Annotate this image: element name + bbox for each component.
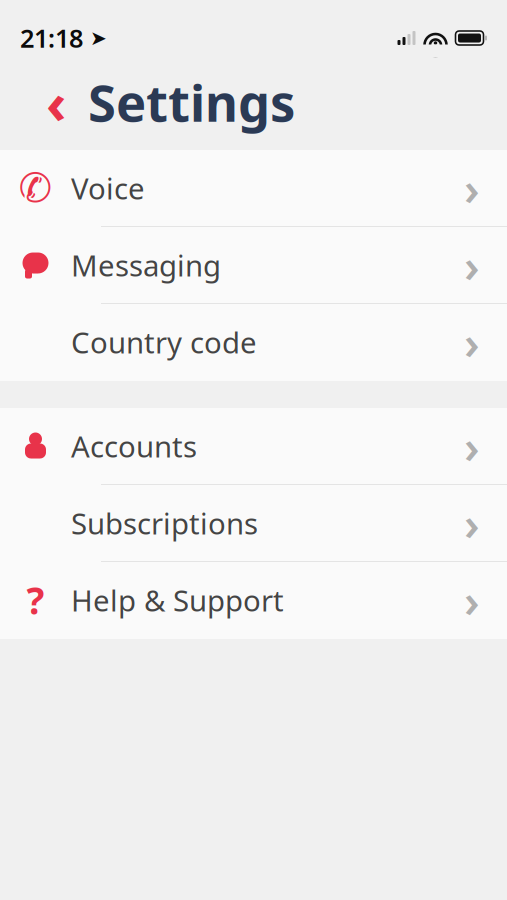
button[interactable]: Messaging (0, 227, 507, 304)
button[interactable]: ✆ (0, 150, 507, 227)
button[interactable]: ? (0, 562, 507, 639)
button[interactable]: Country code (0, 304, 507, 381)
staticText: › (464, 235, 480, 295)
staticText: ➤ (83, 27, 107, 49)
staticText: › (464, 570, 480, 630)
staticText: Help & Support (71, 580, 284, 619)
button[interactable]: Accounts (0, 408, 507, 485)
button[interactable]: Back (34, 77, 78, 127)
staticText: › (464, 312, 480, 372)
staticText: Accounts (71, 426, 197, 465)
staticText: 21:18 (20, 21, 83, 55)
staticText: Voice (71, 168, 145, 207)
staticText: Subscriptions (71, 503, 258, 542)
staticText: › (464, 493, 480, 553)
staticText: ‹ (46, 65, 66, 139)
button[interactable]: Subscriptions (0, 485, 507, 562)
staticText: Messaging (71, 245, 221, 284)
staticText: ✆ (18, 165, 52, 211)
staticText: ? (26, 575, 44, 625)
staticText: › (464, 416, 480, 476)
staticText: › (464, 158, 480, 218)
staticText: Settings (88, 68, 295, 136)
staticText: Country code (71, 322, 257, 361)
